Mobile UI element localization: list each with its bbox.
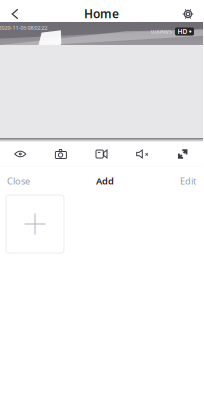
staticText: HD (178, 27, 188, 36)
button[interactable]: Back (1, 0, 29, 22)
staticText: Edit (180, 175, 196, 187)
button[interactable]: Preview (0, 142, 41, 166)
button[interactable]: Snapshot (41, 142, 81, 166)
staticText: Home (84, 5, 119, 21)
staticText: 2020-11-05 08:02:22 (0, 24, 47, 31)
button[interactable]: Add (90, 171, 120, 191)
staticText: Close (7, 175, 30, 187)
button[interactable]: Add device (6, 195, 64, 253)
button[interactable]: Settings (174, 0, 202, 22)
button[interactable]: Full screen (162, 142, 203, 166)
button[interactable]: Edit (174, 171, 202, 191)
button[interactable]: Close (1, 171, 36, 191)
staticText: 0.00KB/S (151, 28, 172, 35)
button[interactable]: Record (81, 142, 122, 166)
button[interactable]: Mute (122, 142, 162, 166)
staticText: Add (96, 175, 114, 187)
